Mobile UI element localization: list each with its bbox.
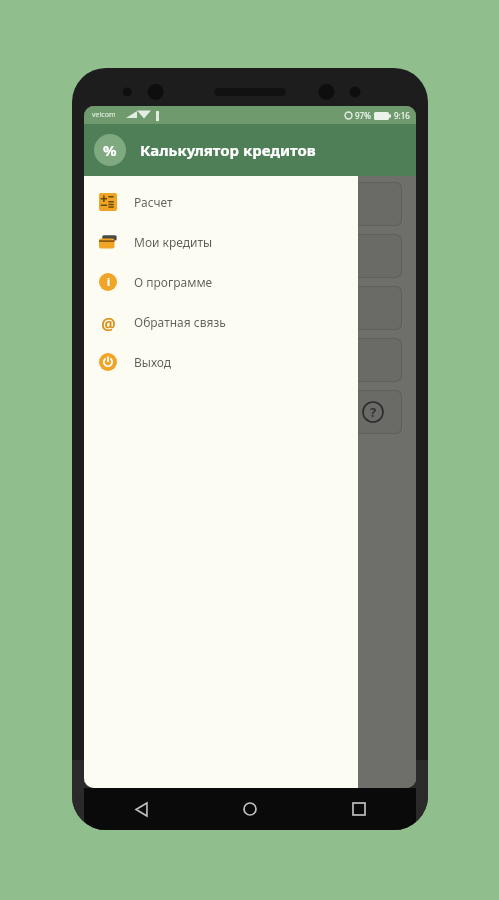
staticText: ? bbox=[370, 403, 377, 421]
button[interactable]: Profile bbox=[94, 134, 126, 166]
staticText: Расчет bbox=[134, 194, 173, 210]
staticText: Обратная связь bbox=[134, 314, 226, 330]
staticText: 9:16 bbox=[394, 110, 410, 121]
staticText: i bbox=[107, 275, 110, 289]
button[interactable]: Help bbox=[98, 390, 402, 434]
button[interactable] bbox=[98, 286, 402, 330]
staticText: Мои кредиты bbox=[134, 234, 213, 250]
button[interactable]: i bbox=[84, 262, 358, 302]
staticText: % bbox=[103, 140, 117, 160]
button[interactable]: Recents bbox=[344, 794, 374, 824]
staticText: О программе bbox=[134, 274, 213, 290]
staticText: Калькулятор кредитов bbox=[140, 140, 316, 160]
button[interactable]: Home bbox=[235, 794, 265, 824]
button[interactable]: Help bbox=[362, 401, 384, 423]
button[interactable]: Мои кредиты bbox=[84, 222, 358, 262]
button[interactable]: @ bbox=[84, 302, 358, 342]
button[interactable]: Выход bbox=[84, 342, 358, 382]
button[interactable] bbox=[98, 338, 402, 382]
button[interactable]: Back bbox=[126, 794, 156, 824]
staticText: Выход bbox=[134, 354, 172, 370]
staticText: velcom bbox=[92, 110, 116, 120]
button[interactable] bbox=[98, 234, 402, 278]
staticText: 97% bbox=[355, 110, 371, 121]
button[interactable]: Расчет bbox=[84, 182, 358, 222]
staticText: @ bbox=[101, 313, 116, 331]
button[interactable] bbox=[98, 182, 402, 226]
